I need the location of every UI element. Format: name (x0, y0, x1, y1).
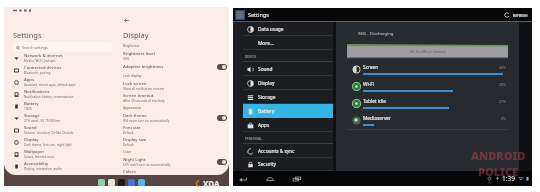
staticText: Lock screen (123, 81, 147, 87)
staticText: Storage (258, 94, 276, 101)
button[interactable]: Home (263, 172, 276, 185)
staticText: Sound (258, 66, 273, 73)
button[interactable]: Lock screen (123, 80, 227, 92)
button[interactable]: Storage (13, 112, 113, 124)
staticText: Colors (123, 169, 136, 175)
button[interactable]: Accounts & sync (243, 144, 333, 158)
button[interactable]: Search settings (13, 42, 113, 52)
staticText: Show all notification content (123, 87, 165, 91)
staticText: Display (24, 137, 39, 143)
staticText: Appearance (123, 106, 142, 110)
staticText: Assistant, recent apps, default apps (24, 83, 76, 87)
button[interactable]: Data usage (243, 22, 333, 36)
button[interactable]: Back (236, 172, 249, 185)
staticText: 21% used - 50.79 GB free (24, 119, 61, 123)
staticText: Display, interaction, audio (24, 167, 62, 171)
button[interactable]: Security (13, 172, 113, 175)
button[interactable]: Display (13, 136, 113, 148)
staticText: Default (123, 143, 134, 147)
button[interactable]: Font size (123, 124, 227, 136)
staticText: Bluetooth, pairing (24, 71, 51, 75)
button[interactable]: Screen (352, 61, 506, 78)
staticText: 100% (24, 107, 32, 111)
staticText: Colors, themed icons (24, 155, 55, 159)
staticText: Network & internet (24, 53, 63, 59)
button[interactable]: Apps (13, 76, 113, 88)
button[interactable]: REFRESH (500, 10, 532, 20)
button[interactable]: Battery (243, 104, 333, 118)
button[interactable]: Mediaserver (352, 112, 506, 129)
button[interactable]: Chrome (138, 179, 145, 186)
staticText: Sound (24, 125, 37, 131)
staticText: 2% (501, 116, 506, 121)
staticText: After 30 seconds of inactivity (123, 99, 165, 103)
staticText: Wi-Fi (363, 81, 374, 88)
button[interactable]: Sound (243, 62, 333, 76)
staticText: ANDROID (471, 148, 526, 163)
button[interactable]: Battery (13, 100, 113, 112)
staticText: Display size (123, 137, 147, 143)
staticText: Settings (13, 30, 42, 40)
button[interactable]: Wallpaper (13, 148, 113, 160)
staticText: Data usage (258, 26, 284, 33)
staticText: Battery (24, 101, 39, 107)
staticText: REFRESH (513, 13, 528, 18)
button[interactable]: Wi-Fi (352, 78, 506, 95)
staticText: Notification history, conversations (24, 95, 74, 99)
staticText: Settings (248, 11, 269, 18)
staticText: Font size (123, 125, 141, 131)
staticText: Screen timeout (123, 93, 154, 99)
staticText: XDA (203, 178, 220, 189)
button[interactable]: Notifications (13, 88, 113, 100)
button[interactable]: Connected devices (13, 64, 113, 76)
button[interactable]: Tablet idle (352, 95, 506, 112)
button[interactable]: Adaptive brightness (123, 62, 227, 72)
button[interactable]: Camera (118, 179, 125, 186)
button[interactable]: Security (243, 158, 333, 171)
staticText: Will never turn on automatically (123, 119, 170, 123)
button[interactable]: Messages (108, 179, 115, 186)
staticText: Display (123, 30, 149, 40)
staticText: Accounts & sync (258, 148, 295, 155)
staticText: Display (258, 80, 275, 87)
staticText: Connected devices (24, 65, 62, 71)
button[interactable]: Brightness level (123, 50, 227, 62)
button[interactable]: More... (243, 36, 333, 50)
staticText: Security (258, 161, 277, 168)
staticText: 27% (499, 99, 506, 104)
staticText: Mobile, Wi-Fi, hotspot (24, 59, 56, 63)
staticText: Color (123, 150, 132, 154)
staticText: Screen (363, 64, 379, 71)
button[interactable]: Storage (243, 90, 333, 104)
staticText: 1:39 (502, 174, 515, 183)
button[interactable]: Screen timeout (123, 92, 227, 104)
button[interactable]: Display (243, 76, 333, 90)
staticText: Dark theme, font size, night light (24, 143, 72, 147)
button[interactable]: Dark theme (123, 112, 227, 124)
staticText: 2h 1m 28s on battery (410, 49, 446, 54)
staticText: 50% (123, 57, 130, 61)
button[interactable]: Night Light (123, 156, 227, 168)
staticText: Off / won't turn on automatically (123, 163, 171, 167)
staticText: Lock display (123, 74, 142, 78)
staticText: DEVICE (245, 55, 257, 59)
staticText: Volume, vibration, Do Not Disturb (24, 131, 74, 135)
staticText: Brightness (123, 44, 140, 48)
staticText: Notifications (24, 89, 50, 95)
staticText: Dark theme (123, 113, 147, 119)
button[interactable]: Phone (98, 179, 105, 186)
staticText: Default (123, 131, 134, 135)
staticText: Wallpaper (24, 149, 45, 155)
button[interactable]: Sound (13, 124, 113, 136)
staticText: Apps (24, 77, 34, 83)
staticText: Tablet idle (363, 98, 386, 105)
button[interactable]: Recent apps (290, 172, 303, 185)
button[interactable]: Network & internet (13, 52, 113, 64)
button[interactable]: Accessibility (13, 160, 113, 172)
button[interactable]: Apps (243, 118, 333, 132)
button[interactable]: Play Store (128, 179, 135, 186)
staticText: PERSONAL (245, 137, 262, 141)
button[interactable]: Colors (123, 168, 227, 175)
button[interactable]: Display size (123, 136, 227, 148)
staticText: Storage (24, 113, 40, 119)
